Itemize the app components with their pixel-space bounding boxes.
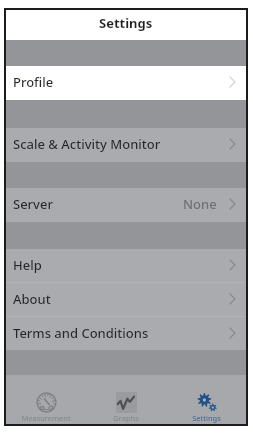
- button[interactable]: Measurement: [6, 375, 86, 424]
- button[interactable]: Help: [6, 249, 246, 282]
- staticText: Settings: [99, 14, 153, 32]
- staticText: Graphs: [113, 413, 139, 423]
- button[interactable]: About: [6, 283, 246, 316]
- staticText: About: [13, 290, 51, 308]
- staticText: Scale & Activity Monitor: [13, 135, 161, 153]
- button[interactable]: Graphs: [86, 375, 166, 424]
- staticText: Measurement: [21, 413, 71, 423]
- staticText: Help: [13, 256, 42, 274]
- button[interactable]: Terms and Conditions: [6, 317, 246, 350]
- staticText: Profile: [13, 73, 54, 91]
- staticText: None: [183, 195, 217, 213]
- button[interactable]: Server: [6, 188, 246, 222]
- button[interactable]: Profile: [6, 66, 246, 100]
- button[interactable]: Scale & Activity Monitor: [6, 128, 246, 162]
- staticText: Terms and Conditions: [13, 324, 149, 342]
- staticText: Settings: [192, 413, 221, 423]
- staticText: Server: [13, 195, 53, 213]
- button[interactable]: Settings: [166, 375, 246, 424]
